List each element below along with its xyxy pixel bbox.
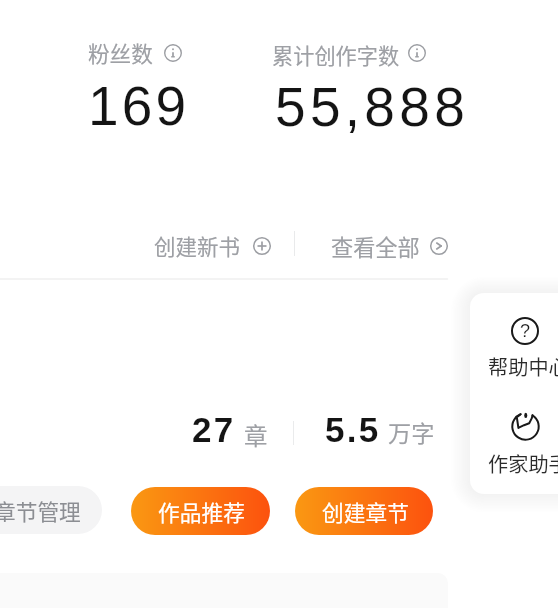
staticText: 55,888	[275, 76, 470, 137]
staticText: 169	[88, 75, 190, 136]
staticText: 粉丝数	[88, 37, 153, 67]
staticText: 创建新书	[154, 230, 241, 260]
staticText: 章	[244, 418, 268, 452]
staticText: 5.5	[325, 410, 381, 449]
staticText: 帮助中心	[488, 352, 558, 381]
staticText: 万字	[388, 415, 435, 449]
other: 作家助手	[511, 412, 540, 441]
staticText: 章节管理	[0, 495, 81, 526]
other: 帮助中心	[511, 317, 539, 345]
other: 说明	[408, 44, 426, 62]
button[interactable]: 帮助中心	[478, 307, 558, 389]
other: 说明	[164, 44, 182, 62]
button[interactable]: 粉丝数	[86, 34, 182, 64]
staticText: 作家助手	[488, 449, 558, 478]
button[interactable]: 创建新书	[150, 228, 274, 258]
staticText: ?	[520, 321, 531, 341]
other: 查看全部	[430, 237, 448, 255]
button[interactable]: 查看全部	[327, 228, 451, 258]
staticText: 累计创作字数	[272, 39, 400, 69]
staticText: 查看全部	[331, 230, 420, 260]
other: 创建新书	[253, 237, 271, 255]
button[interactable]: 创建章节	[295, 487, 433, 535]
button[interactable]: 章节管理	[0, 486, 102, 534]
button[interactable]: 作家助手	[478, 403, 558, 485]
button[interactable]: 作品推荐	[131, 487, 270, 535]
staticText: 创建章节	[322, 496, 409, 527]
staticText: 27	[192, 410, 236, 449]
staticText: 作品推荐	[158, 496, 245, 527]
button[interactable]: 累计创作字数	[270, 34, 428, 64]
